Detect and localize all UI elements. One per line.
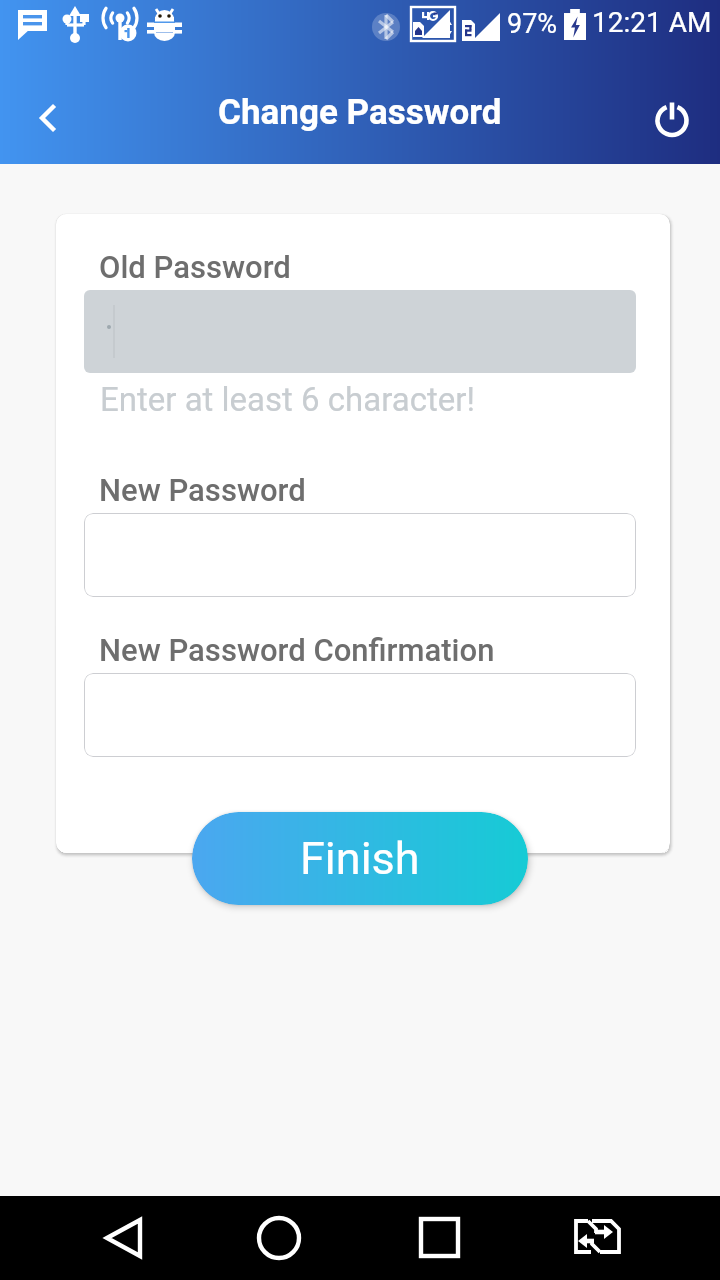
- button[interactable]: Back: [90, 1210, 150, 1266]
- staticText: New Password Confirmation: [99, 632, 495, 668]
- staticText: Change Password: [218, 92, 502, 133]
- staticText: 12:21 AM: [592, 6, 712, 39]
- staticText: Finish: [300, 832, 420, 885]
- button[interactable]: Logout: [640, 86, 704, 150]
- staticText: Enter at least 6 character!: [100, 380, 475, 419]
- staticText: 97%: [507, 8, 558, 40]
- staticText: New Password: [99, 472, 306, 508]
- button[interactable]: [84, 673, 636, 757]
- button[interactable]: [84, 513, 636, 597]
- button[interactable]: Recent apps: [404, 1210, 464, 1266]
- button[interactable]: Switch app: [559, 1210, 619, 1266]
- button[interactable]: Back: [15, 86, 79, 150]
- button[interactable]: Home: [249, 1210, 309, 1266]
- staticText: Old Password: [99, 249, 291, 285]
- button[interactable]: Finish: [192, 812, 528, 905]
